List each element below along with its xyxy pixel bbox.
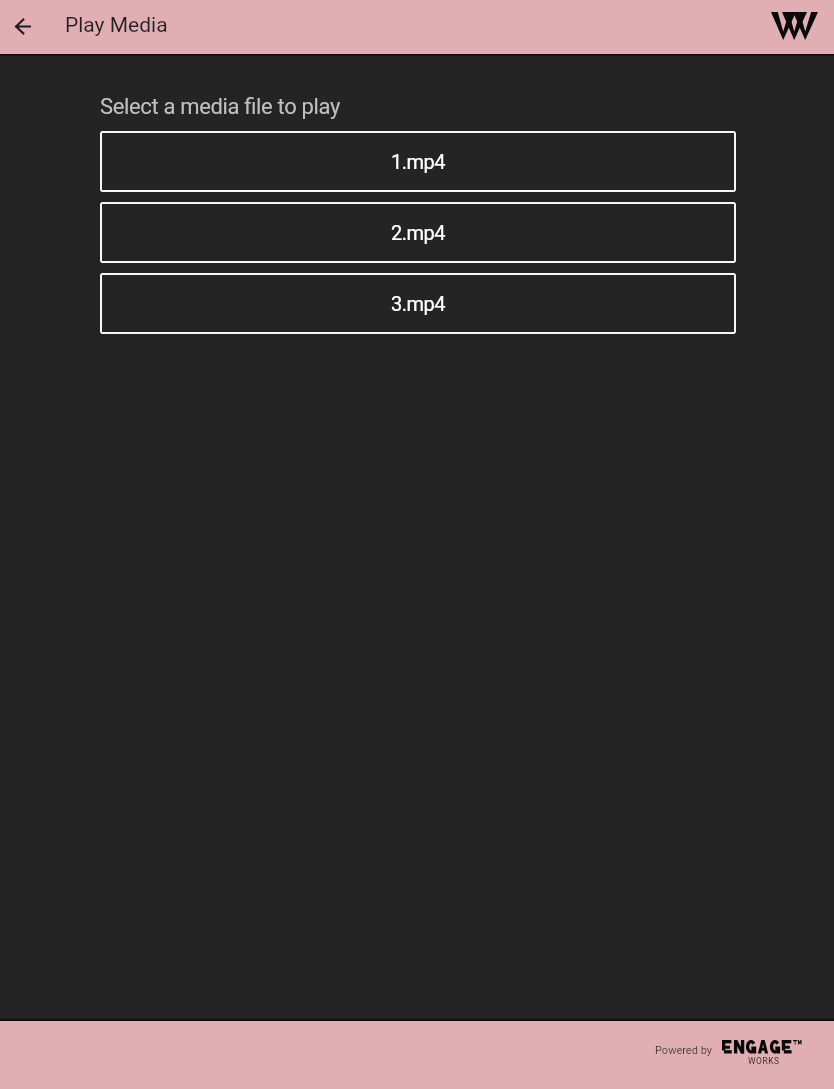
- staticText: WORKS: [748, 1056, 780, 1066]
- staticText: 2.mp4: [391, 221, 445, 244]
- staticText: Play Media: [65, 13, 168, 38]
- staticText: 1.mp4: [391, 150, 445, 173]
- staticText: Powered by: [655, 1044, 712, 1057]
- button[interactable]: 1.mp4: [100, 131, 736, 192]
- button[interactable]: 3.mp4: [100, 273, 736, 334]
- staticText: 3.mp4: [391, 292, 445, 315]
- button[interactable]: App logo: [769, 4, 819, 48]
- staticText: Select a media file to play: [100, 94, 340, 120]
- button[interactable]: Back: [3, 6, 43, 46]
- button[interactable]: 2.mp4: [100, 202, 736, 263]
